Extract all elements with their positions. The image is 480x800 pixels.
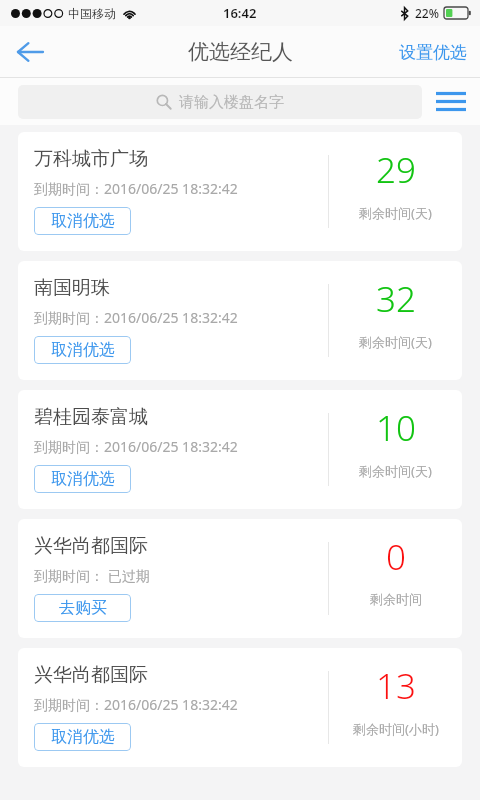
button[interactable]: 南国明珠 xyxy=(18,261,462,380)
button[interactable]: 兴华尚都国际 xyxy=(18,519,462,638)
staticText: 碧桂园泰富城 xyxy=(34,405,148,429)
staticText: 优选经纪人 xyxy=(188,39,293,65)
staticText: 16:42 xyxy=(223,4,257,22)
button[interactable]: 取消优选 xyxy=(34,465,131,493)
button[interactable]: 万科城市广场 xyxy=(18,132,462,251)
staticText: 到期时间：2016/06/25 18:32:42 xyxy=(34,695,238,714)
staticText: 取消优选 xyxy=(51,340,115,360)
staticText: 29 xyxy=(376,146,416,194)
staticText: 中国移动 xyxy=(68,6,116,21)
button[interactable]: Menu xyxy=(422,78,480,125)
staticText: 兴华尚都国际 xyxy=(34,663,148,687)
staticText: 22% xyxy=(415,5,439,21)
staticText: 设置优选 xyxy=(399,42,467,63)
staticText: 请输入楼盘名字 xyxy=(179,93,284,112)
button[interactable]: 取消优选 xyxy=(34,207,131,235)
staticText: 取消优选 xyxy=(51,469,115,489)
staticText: 兴华尚都国际 xyxy=(34,534,148,558)
staticText: 32 xyxy=(376,275,416,323)
button[interactable]: 取消优选 xyxy=(34,336,131,364)
staticText: 10 xyxy=(376,404,416,452)
button[interactable]: 去购买 xyxy=(34,594,131,622)
staticText: 取消优选 xyxy=(51,727,115,747)
staticText: 剩余时间(天) xyxy=(359,333,432,351)
staticText: 到期时间：2016/06/25 18:32:42 xyxy=(34,179,238,198)
button[interactable]: 取消优选 xyxy=(34,723,131,751)
staticText: 到期时间：2016/06/25 18:32:42 xyxy=(34,308,238,327)
button[interactable]: 兴华尚都国际 xyxy=(18,648,462,767)
staticText: 0 xyxy=(386,533,406,581)
staticText: 取消优选 xyxy=(51,211,115,231)
staticText: 去购买 xyxy=(59,598,107,618)
staticText: 南国明珠 xyxy=(34,276,110,300)
button[interactable]: Back xyxy=(0,26,58,78)
button[interactable]: 设置优选 xyxy=(386,26,480,78)
staticText: 剩余时间(小时) xyxy=(353,720,439,738)
staticText: 剩余时间 xyxy=(370,591,422,607)
staticText: 到期时间：2016/06/25 18:32:42 xyxy=(34,437,238,456)
staticText: 到期时间： 已过期 xyxy=(34,566,150,585)
staticText: 万科城市广场 xyxy=(34,147,148,171)
staticText: 剩余时间(天) xyxy=(359,462,432,480)
button[interactable]: 碧桂园泰富城 xyxy=(18,390,462,509)
button[interactable]: 请输入楼盘名字 xyxy=(18,85,422,119)
staticText: 13 xyxy=(376,662,416,710)
staticText: 剩余时间(天) xyxy=(359,204,432,222)
